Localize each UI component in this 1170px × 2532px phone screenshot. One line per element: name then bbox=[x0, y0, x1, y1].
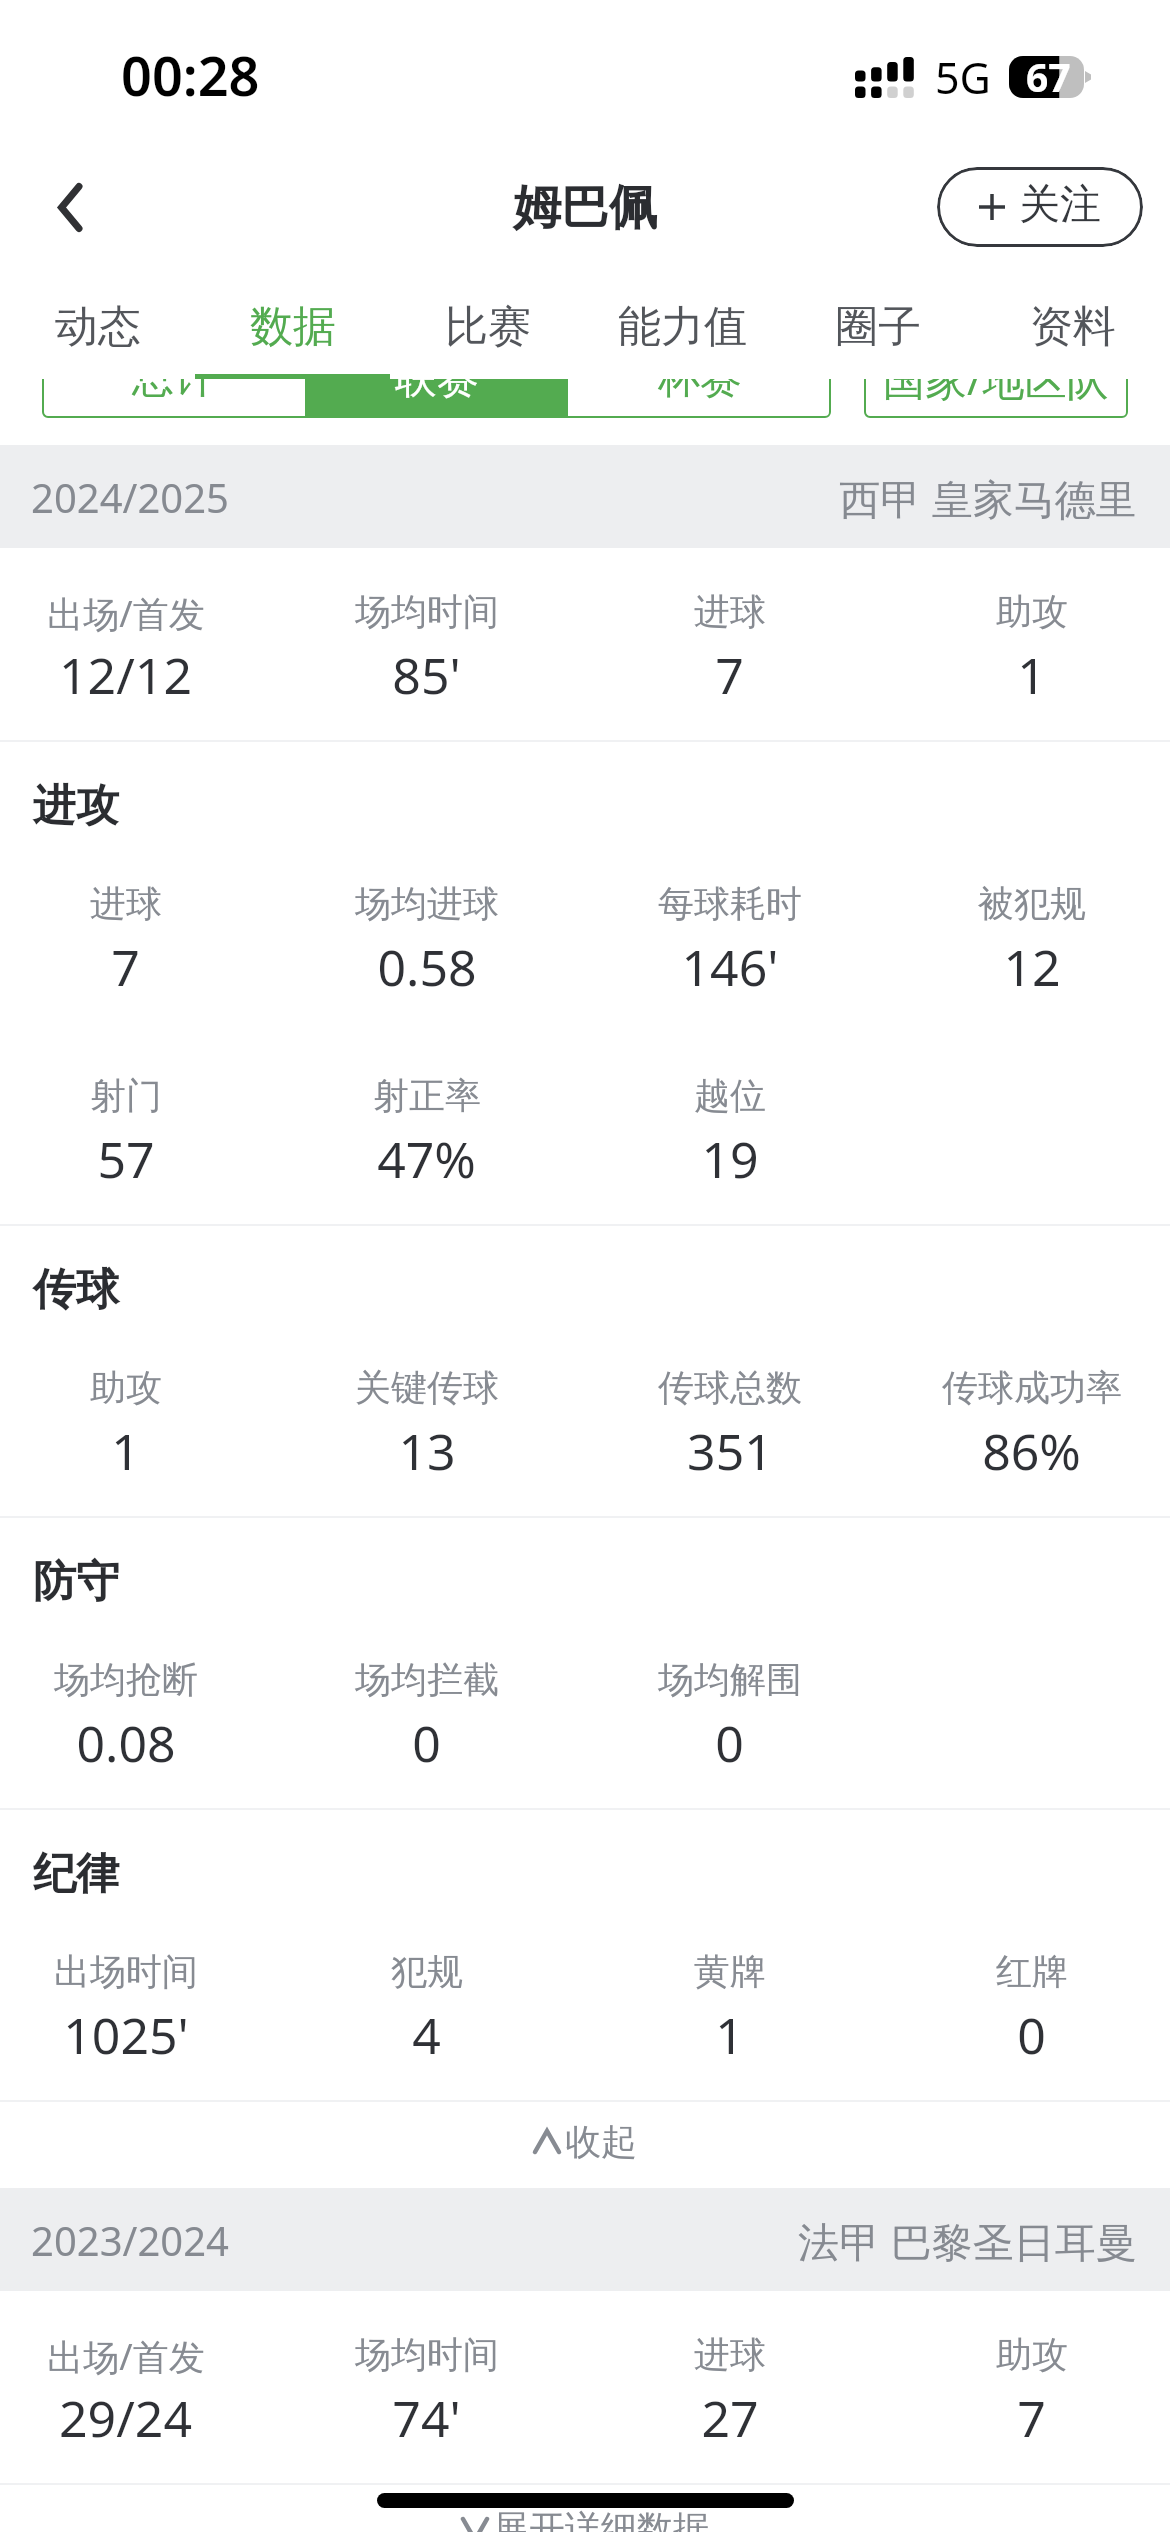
staticText: 射门 bbox=[90, 1073, 162, 1118]
staticText: 杯赛 bbox=[658, 352, 742, 405]
staticText: 2024/2025 bbox=[31, 470, 229, 524]
button[interactable]: 动态 bbox=[0, 300, 195, 380]
staticText: 12/12 bbox=[59, 641, 192, 709]
staticText: 0 bbox=[715, 1709, 744, 1777]
staticText: 助攻 bbox=[996, 2332, 1068, 2377]
staticText: 场均时间 bbox=[355, 2332, 499, 2377]
staticText: 7 bbox=[111, 933, 140, 1001]
staticText: 出场/首发 bbox=[47, 2332, 205, 2381]
staticText: 19 bbox=[701, 1125, 759, 1193]
staticText: 出场时间 bbox=[54, 1949, 198, 1994]
button[interactable]: 能力值 bbox=[585, 300, 780, 380]
staticText: 7 bbox=[1017, 2384, 1046, 2452]
button[interactable]: 展开详细数据 bbox=[0, 2485, 1170, 2532]
button[interactable]: 总计 bbox=[42, 338, 305, 418]
staticText: 犯规 bbox=[391, 1949, 463, 1994]
button[interactable]: 收起 bbox=[0, 2102, 1170, 2188]
staticText: 传球 bbox=[33, 1263, 119, 1317]
staticText: 纪律 bbox=[33, 1847, 119, 1901]
staticText: 动态 bbox=[55, 300, 141, 354]
staticText: 关注 bbox=[1019, 179, 1101, 231]
staticText: 场均拦截 bbox=[355, 1657, 499, 1702]
staticText: 4 bbox=[412, 2001, 441, 2069]
staticText: 场均进球 bbox=[355, 881, 499, 926]
staticText: 越位 bbox=[694, 1073, 766, 1118]
staticText: 74' bbox=[392, 2384, 461, 2452]
staticText: 进球 bbox=[694, 589, 766, 634]
staticText: 传球总数 bbox=[658, 1365, 802, 1410]
staticText: 2023/2024 bbox=[31, 2213, 229, 2267]
staticText: 进攻 bbox=[33, 779, 119, 833]
staticText: 关键传球 bbox=[355, 1365, 499, 1410]
staticText: 联赛 bbox=[395, 352, 479, 405]
staticText: 法甲 巴黎圣日耳曼 bbox=[798, 2213, 1137, 2269]
staticText: 67 bbox=[1026, 50, 1071, 103]
staticText: 资料 bbox=[1030, 300, 1116, 354]
staticText: 351 bbox=[687, 1417, 773, 1485]
staticText: 场均抢断 bbox=[54, 1657, 198, 1702]
staticText: 出场/首发 bbox=[47, 589, 205, 638]
staticText: 场均时间 bbox=[355, 589, 499, 634]
staticText: 1 bbox=[715, 2001, 744, 2069]
staticText: 黄牌 bbox=[694, 1949, 766, 1994]
staticText: 7 bbox=[715, 641, 744, 709]
staticText: 西甲 皇家马德里 bbox=[839, 470, 1137, 526]
staticText: 1025' bbox=[63, 2001, 189, 2069]
staticText: 0.58 bbox=[377, 933, 477, 1001]
button[interactable]: Back bbox=[15, 152, 125, 262]
staticText: 57 bbox=[97, 1125, 155, 1193]
staticText: 00:28 bbox=[121, 38, 260, 112]
staticText: 能力值 bbox=[618, 300, 747, 354]
button[interactable]: 数据 bbox=[195, 300, 390, 380]
staticText: 总计 bbox=[132, 352, 216, 405]
staticText: 13 bbox=[398, 1417, 456, 1485]
staticText: 圈子 bbox=[835, 300, 921, 354]
staticText: 27 bbox=[701, 2384, 759, 2452]
staticText: 每球耗时 bbox=[658, 881, 802, 926]
button[interactable]: 联赛 bbox=[305, 338, 568, 418]
staticText: 0 bbox=[412, 1709, 441, 1777]
staticText: 防守 bbox=[33, 1555, 119, 1609]
staticText: 进球 bbox=[694, 2332, 766, 2377]
staticText: 1 bbox=[111, 1417, 140, 1485]
staticText: 47% bbox=[377, 1125, 476, 1193]
staticText: 收起 bbox=[565, 2119, 637, 2164]
button[interactable]: 国家/地区队 bbox=[864, 338, 1128, 418]
staticText: 0 bbox=[1017, 2001, 1046, 2069]
button[interactable]: 比赛 bbox=[390, 300, 585, 380]
staticText: 进球 bbox=[90, 881, 162, 926]
staticText: 数据 bbox=[250, 300, 336, 354]
staticText: 场均解围 bbox=[658, 1657, 802, 1702]
staticText: 被犯规 bbox=[978, 881, 1086, 926]
staticText: 86% bbox=[982, 1417, 1081, 1485]
staticText: 1 bbox=[1017, 641, 1046, 709]
staticText: 29/24 bbox=[59, 2384, 192, 2452]
staticText: 传球成功率 bbox=[942, 1365, 1122, 1410]
staticText: 国家/地区队 bbox=[883, 350, 1109, 407]
staticText: 姆巴佩 bbox=[513, 178, 657, 238]
button[interactable]: 圈子 bbox=[780, 300, 975, 380]
staticText: 85' bbox=[392, 641, 461, 709]
staticText: 助攻 bbox=[996, 589, 1068, 634]
button[interactable]: 杯赛 bbox=[568, 338, 831, 418]
button[interactable]: 关注 bbox=[937, 167, 1143, 247]
staticText: 比赛 bbox=[445, 300, 531, 354]
staticText: 146' bbox=[681, 933, 779, 1001]
staticText: 展开详细数据 bbox=[493, 2506, 709, 2532]
staticText: 射正率 bbox=[373, 1073, 481, 1118]
staticText: 12 bbox=[1003, 933, 1061, 1001]
staticText: 红牌 bbox=[996, 1949, 1068, 1994]
staticText: 0.08 bbox=[76, 1709, 176, 1777]
staticText: 助攻 bbox=[90, 1365, 162, 1410]
button[interactable]: 资料 bbox=[975, 300, 1170, 380]
staticText: 5G bbox=[935, 48, 991, 107]
